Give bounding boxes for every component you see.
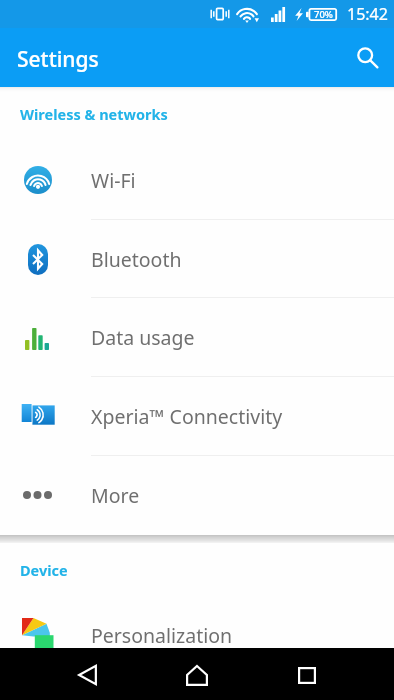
staticText: Wireless & networks bbox=[20, 104, 168, 124]
button[interactable]: Wi-Fi bbox=[0, 140, 394, 220]
button[interactable]: Recent apps bbox=[276, 648, 338, 700]
button[interactable]: Back bbox=[56, 648, 118, 700]
staticText: More bbox=[91, 482, 140, 509]
staticText: Settings bbox=[17, 45, 99, 74]
staticText: Data usage bbox=[91, 324, 195, 351]
staticText: 70% bbox=[314, 8, 333, 21]
staticText: Xperia™ Connectivity bbox=[91, 403, 283, 430]
staticText: 15:42 bbox=[347, 3, 388, 25]
button[interactable]: Personalization bbox=[0, 596, 394, 675]
staticText: Personalization bbox=[91, 622, 233, 649]
button[interactable]: Search bbox=[345, 35, 391, 81]
button[interactable]: Bluetooth bbox=[0, 220, 394, 298]
button[interactable]: Home bbox=[166, 648, 228, 700]
staticText: Device bbox=[20, 560, 68, 580]
staticText: Bluetooth bbox=[91, 246, 182, 273]
button[interactable]: Xperia™ Connectivity bbox=[0, 377, 394, 456]
button[interactable]: Data usage bbox=[0, 298, 394, 377]
staticText: Wi-Fi bbox=[91, 167, 136, 194]
button[interactable]: More bbox=[0, 456, 394, 534]
